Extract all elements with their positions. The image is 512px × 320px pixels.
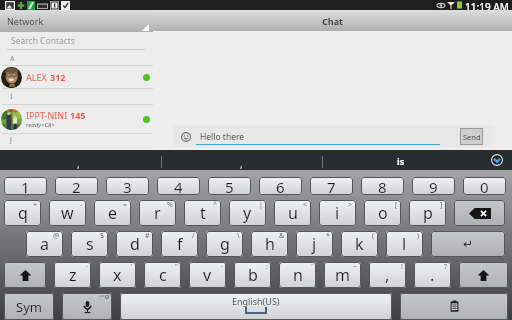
button[interactable]: w [49,200,86,226]
staticText: ready<CA> [26,121,55,129]
button[interactable]: . [414,262,451,288]
staticText: IPPT-NINI [26,109,70,121]
button[interactable]: Network [0,10,153,32]
button[interactable]: 1 [4,177,47,195]
staticText: s [86,233,94,255]
button[interactable]: Clipboard [400,293,508,320]
button[interactable]: Search Contacts [0,32,153,53]
staticText: e [108,202,118,224]
button[interactable]: 7 [310,177,353,195]
staticText: ) [417,231,420,241]
button[interactable]: b [234,262,271,288]
staticText: o [378,202,388,224]
button[interactable]: English(US) [120,293,392,320]
staticText: ] [440,200,443,210]
button[interactable]: ALEX [0,66,153,88]
button[interactable]: 6 [259,177,302,195]
staticText: @ [53,231,60,241]
staticText: 0 [480,177,489,195]
staticText: 4 [174,177,183,195]
button[interactable]: l [386,231,423,257]
button[interactable]: a [26,231,63,257]
button[interactable]: d [116,231,153,257]
staticText: ! [401,262,403,272]
staticText: y [243,202,252,224]
button[interactable]: 0 [463,177,506,195]
button[interactable]: Shift [459,262,508,288]
staticText: + [33,200,38,210]
button[interactable]: i [319,200,356,226]
button[interactable]: q [4,200,41,226]
button[interactable]: x [99,262,136,288]
staticText: · [221,262,223,272]
staticText: ~ [353,262,358,272]
button[interactable]: f [161,231,198,257]
staticText: 5 [225,177,234,195]
button[interactable]: 8 [361,177,404,195]
staticText: 2 [72,177,81,195]
button[interactable]: v [189,262,226,288]
staticText: 8 [378,177,387,195]
staticText: - [80,200,83,210]
staticText: J [10,135,12,145]
button[interactable]: 2 [55,177,98,195]
button[interactable]: Shift [4,262,46,288]
button[interactable]: , [77,157,80,171]
staticText: g [220,233,230,255]
button[interactable]: k [341,231,378,257]
button[interactable]: 4 [157,177,200,195]
staticText: I [10,92,13,102]
button[interactable]: r [139,200,176,226]
button[interactable]: 3 [106,177,149,195]
button[interactable]: Show more suggestions [491,154,503,166]
button[interactable]: 9 [412,177,455,195]
staticText: 7 [327,177,336,195]
button[interactable]: s [71,231,108,257]
button[interactable]: Insert emoticon [181,132,191,142]
staticText: ? [444,262,448,272]
staticText: t [200,202,206,224]
staticText: ` [311,262,313,272]
staticText: Search Contacts [11,35,75,47]
staticText: English(US) [232,295,280,307]
button[interactable]: n [279,262,316,288]
button[interactable]: , [240,157,243,171]
staticText: 3 [123,177,132,195]
staticText: j [312,233,317,255]
staticText: q [18,202,28,224]
button[interactable]: c [144,262,181,288]
staticText: > [348,200,353,210]
button[interactable]: o [364,200,401,226]
staticText: p [423,202,433,224]
staticText: n [293,264,303,286]
button[interactable]: Voice input [62,293,112,320]
button[interactable]: u [274,200,311,226]
button[interactable]: is [397,155,405,167]
button[interactable]: h [251,231,288,257]
staticText: 145 [70,109,86,121]
staticText: Chat [322,15,343,27]
button[interactable]: z [54,262,91,288]
button[interactable]: Send [460,128,483,145]
staticText: A [10,54,15,64]
staticText: * [326,231,330,241]
staticText: # [145,231,150,241]
button[interactable]: IPPT-NINI [0,105,153,133]
staticText: l [402,233,407,255]
button[interactable]: t [184,200,221,226]
staticText: Sym [16,298,42,316]
button[interactable]: y [229,200,266,226]
button[interactable]: Symbols [4,293,54,320]
staticText: Network [7,15,44,27]
button[interactable]: , [369,262,406,288]
button[interactable]: 5 [208,177,251,195]
button[interactable]: Backspace [454,200,505,226]
button[interactable]: e [94,200,131,226]
button[interactable]: j [296,231,333,257]
staticText: c [159,264,167,286]
button[interactable]: g [206,231,243,257]
button[interactable]: p [409,200,446,226]
staticText: · [86,262,88,272]
button[interactable]: Enter [431,231,505,257]
button[interactable]: m [324,262,361,288]
